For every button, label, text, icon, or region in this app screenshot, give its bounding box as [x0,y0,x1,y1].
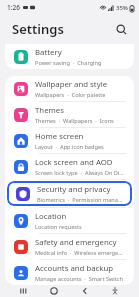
staticText: Security and privacy [37,184,111,195]
staticText: Layout · App icon badges [35,143,104,151]
staticText: Themes [35,105,64,116]
staticText: Biometrics · Permission manager [37,196,124,204]
button[interactable]: Location [5,208,134,233]
button[interactable]: Back [77,285,93,297]
button[interactable]: Accounts and backup [5,260,134,285]
staticText: Power saving · Charging [35,59,102,67]
staticText: Location requests [35,223,82,231]
button[interactable]: Recents [16,285,32,297]
staticText: Settings [12,20,64,38]
staticText: 35% [116,4,128,12]
staticText: Home screen [35,131,84,142]
button[interactable]: Safety and emergency [5,234,134,259]
button[interactable]: Wallpaper and style [5,76,134,101]
button[interactable]: Lock screen and AOD [5,154,134,179]
staticText: 1:26 [7,3,20,12]
button[interactable]: Search [112,20,130,38]
staticText: Medical info · Wireless emergency alerts [35,249,126,257]
staticText: Battery [35,47,62,58]
staticText: Lock screen and AOD [35,157,113,168]
staticText: Wallpapers · Color palette [35,91,106,99]
staticText: Location [35,211,67,222]
button[interactable]: Accessibility [107,285,123,297]
button[interactable]: Home screen [5,128,134,153]
staticText: Themes · Wallpapers · Icons [35,117,114,125]
staticText: Screen lock type · Always On Display [35,169,126,177]
staticText: Manage accounts · Smart Switch [35,275,123,283]
staticText: Safety and emergency [35,237,117,248]
staticText: Wallpaper and style [35,79,108,90]
button[interactable]: Themes [5,102,134,127]
button[interactable]: Battery [5,44,134,69]
button[interactable]: Home [46,285,62,297]
button[interactable]: Security and privacy [7,181,132,206]
staticText: Accounts and backup [35,263,114,274]
